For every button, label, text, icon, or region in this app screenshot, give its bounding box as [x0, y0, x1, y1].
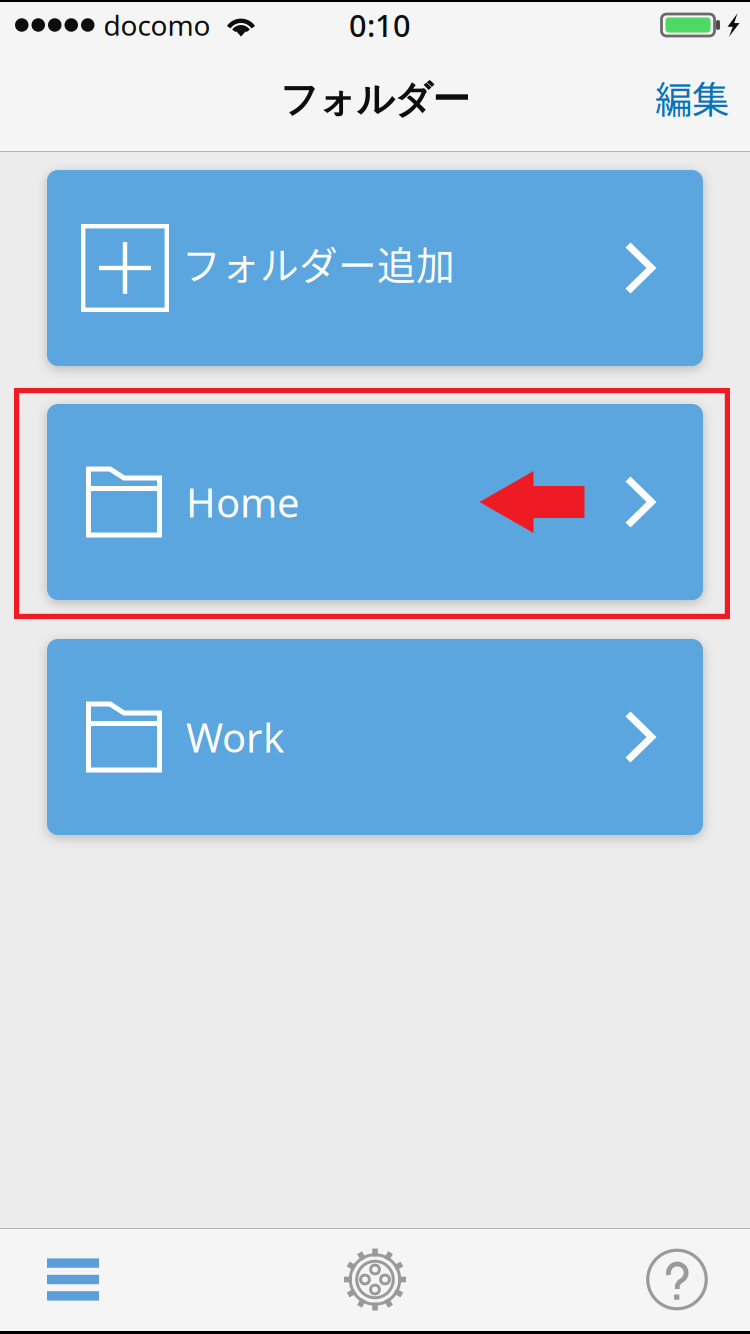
button[interactable]: Settings	[302, 1228, 448, 1330]
button[interactable]: 編集	[639, 55, 750, 143]
staticText: Home	[186, 475, 300, 528]
button[interactable]: Home	[47, 404, 703, 600]
staticText: フォルダー追加	[182, 235, 455, 291]
button[interactable]: Work	[47, 639, 703, 835]
staticText: フォルダー	[280, 76, 469, 123]
staticText: 編集	[655, 70, 729, 125]
button[interactable]: Help	[604, 1228, 750, 1330]
button[interactable]: List	[0, 1228, 146, 1330]
staticText: docomo	[103, 6, 210, 44]
staticText: Work	[186, 710, 284, 763]
button[interactable]: フォルダー追加	[47, 170, 703, 366]
staticText: 0:10	[349, 5, 411, 45]
